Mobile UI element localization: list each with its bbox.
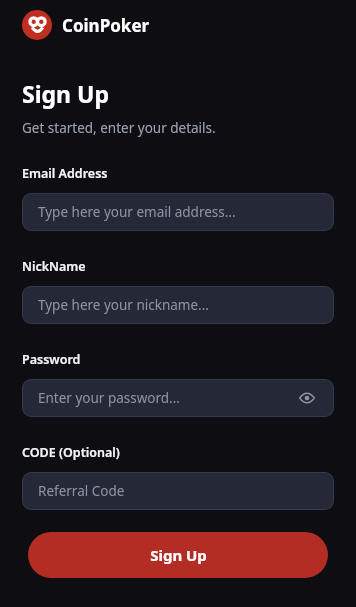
staticText: Password xyxy=(22,351,81,368)
button[interactable]: Referral Code xyxy=(22,472,334,510)
button[interactable]: CoinPoker xyxy=(22,10,150,40)
button[interactable]: Type here your email address... xyxy=(22,193,334,231)
staticText: CoinPoker xyxy=(62,14,150,37)
staticText: Sign Up xyxy=(150,545,207,565)
staticText: Type here your nickname... xyxy=(38,296,209,314)
staticText: Sign Up xyxy=(22,78,109,109)
button[interactable]: Show password xyxy=(296,387,318,409)
staticText: CODE (Optional) xyxy=(22,444,120,461)
button[interactable]: Type here your nickname... xyxy=(22,286,334,324)
staticText: Email Address xyxy=(22,165,108,182)
staticText: NickName xyxy=(22,258,86,275)
button[interactable]: Sign Up xyxy=(28,532,328,578)
button[interactable]: Enter your password... xyxy=(22,379,334,417)
staticText: Get started, enter your details. xyxy=(22,119,216,137)
staticText: Enter your password... xyxy=(38,389,180,407)
staticText: Referral Code xyxy=(38,482,125,500)
staticText: Type here your email address... xyxy=(38,203,236,221)
